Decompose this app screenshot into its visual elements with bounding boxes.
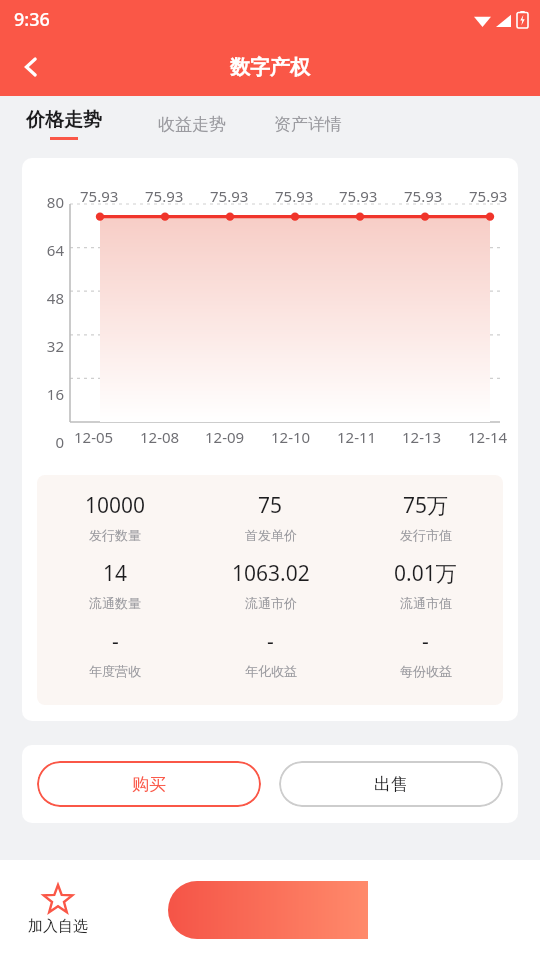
button[interactable]: Trade xyxy=(168,881,368,939)
button[interactable]: 资产详情 xyxy=(270,106,346,143)
staticText: 9:36 xyxy=(14,7,50,32)
staticText: 流通市值 xyxy=(400,595,452,611)
staticText: 首发单价 xyxy=(245,527,297,543)
staticText: 75.93 xyxy=(145,186,184,206)
staticText: 75.93 xyxy=(210,186,249,206)
staticText: 75.93 xyxy=(275,186,314,206)
staticText: - xyxy=(422,627,429,656)
staticText: 资产详情 xyxy=(274,114,342,135)
staticText: 年化收益 xyxy=(245,663,297,679)
staticText: 75 xyxy=(258,491,283,520)
staticText: 12-11 xyxy=(337,427,377,447)
staticText: 发行数量 xyxy=(89,527,141,543)
staticText: 发行市值 xyxy=(400,527,452,543)
staticText: 64 xyxy=(46,240,64,260)
staticText: 每份收益 xyxy=(400,663,452,679)
staticText: 0.01万 xyxy=(394,559,457,588)
staticText: 75.93 xyxy=(80,186,119,206)
staticText: 数字产权 xyxy=(230,55,310,80)
staticText: 1063.02 xyxy=(232,559,310,588)
staticText: 32 xyxy=(46,336,64,356)
staticText: 14 xyxy=(103,559,128,588)
button[interactable]: 价格走势 xyxy=(22,108,106,140)
staticText: 0 xyxy=(55,432,64,452)
staticText: 16 xyxy=(46,384,64,404)
button[interactable]: 购买 xyxy=(37,761,261,807)
staticText: 12-09 xyxy=(205,427,245,447)
staticText: 75.93 xyxy=(469,186,508,206)
staticText: 12-05 xyxy=(74,427,114,447)
staticText: 12-10 xyxy=(271,427,311,447)
staticText: 出售 xyxy=(374,774,408,795)
staticText: 收益走势 xyxy=(158,114,226,135)
staticText: 80 xyxy=(46,192,64,212)
staticText: 12-14 xyxy=(468,427,508,447)
staticText: - xyxy=(112,627,119,656)
staticText: 75.93 xyxy=(404,186,443,206)
staticText: 10000 xyxy=(85,491,146,520)
button[interactable]: 加入自选 xyxy=(28,885,88,936)
staticText: 加入自选 xyxy=(28,917,88,936)
staticText: - xyxy=(267,627,274,656)
staticText: 价格走势 xyxy=(26,108,102,132)
staticText: 流通数量 xyxy=(89,595,141,611)
staticText: 12-13 xyxy=(402,427,442,447)
staticText: 流通市价 xyxy=(245,595,297,611)
staticText: 75万 xyxy=(403,491,449,520)
button[interactable]: 出售 xyxy=(279,761,503,807)
button[interactable]: 收益走势 xyxy=(154,106,230,143)
staticText: 48 xyxy=(46,288,64,308)
staticText: 75.93 xyxy=(339,186,378,206)
button[interactable]: Back xyxy=(8,43,56,91)
staticText: 12-08 xyxy=(140,427,180,447)
staticText: 购买 xyxy=(132,774,166,795)
staticText: 年度营收 xyxy=(89,663,141,679)
